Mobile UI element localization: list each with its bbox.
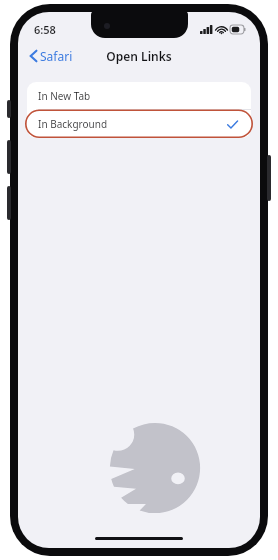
- staticText: In Background: [38, 117, 108, 131]
- button[interactable]: In Background: [27, 110, 251, 138]
- staticText: Safari: [40, 48, 73, 64]
- button[interactable]: Safari: [26, 45, 77, 67]
- staticText: 6:58: [34, 22, 56, 37]
- button[interactable]: In New Tab: [27, 82, 251, 109]
- staticText: Open Links: [106, 48, 172, 64]
- staticText: In New Tab: [38, 89, 91, 103]
